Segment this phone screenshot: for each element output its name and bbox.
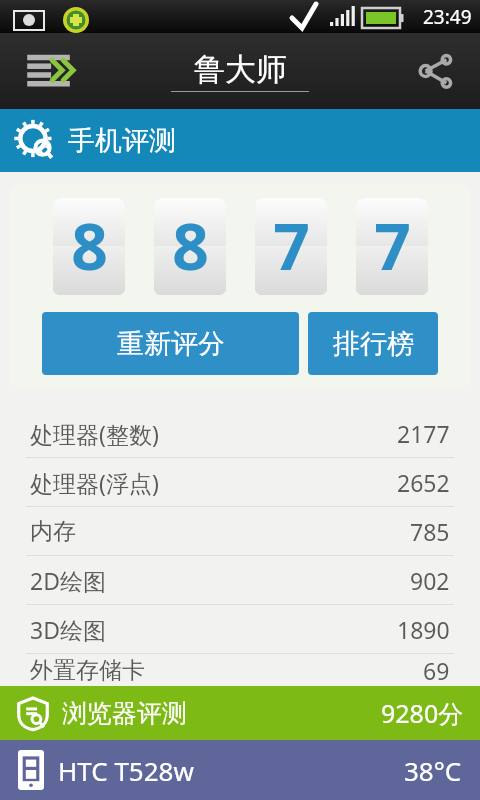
button[interactable]: 处理器(浮点) [0, 458, 480, 506]
button[interactable]: 浏览器评测 [0, 686, 480, 740]
staticText: 2652 [397, 467, 450, 498]
staticText: 785 [410, 516, 450, 547]
button[interactable]: 重新评分 [42, 312, 299, 375]
staticText: 鲁大师 [194, 50, 287, 89]
staticText: 38°C [404, 753, 462, 788]
staticText: 内存 [30, 517, 76, 546]
staticText: 8 [71, 202, 108, 289]
button[interactable]: Share [392, 33, 480, 109]
staticText: 处理器(浮点) [30, 467, 159, 498]
staticText: 手机评测 [68, 124, 176, 158]
staticText: 重新评分 [117, 327, 225, 361]
button[interactable]: Menu [0, 33, 96, 109]
staticText: 浏览器评测 [62, 698, 187, 729]
button[interactable]: 内存 [0, 507, 480, 555]
staticText: 69 [423, 655, 450, 686]
staticText: 1890 [397, 614, 450, 645]
staticText: HTC T528w [58, 753, 194, 788]
button[interactable]: 排行榜 [308, 312, 438, 375]
button[interactable]: HTC T528w [0, 740, 480, 800]
staticText: 7 [374, 202, 411, 289]
button[interactable]: 3D绘图 [0, 605, 480, 653]
staticText: 23:49 [423, 4, 472, 30]
staticText: 902 [410, 565, 450, 596]
button[interactable]: 手机评测 [0, 109, 480, 172]
staticText: 2D绘图 [30, 565, 106, 596]
staticText: 3D绘图 [30, 614, 106, 645]
staticText: 外置存储卡 [30, 656, 145, 685]
staticText: 9280分 [381, 696, 464, 730]
staticText: 处理器(整数) [30, 418, 159, 449]
button[interactable]: 2D绘图 [0, 556, 480, 604]
staticText: 排行榜 [333, 327, 414, 361]
staticText: 2177 [397, 418, 450, 449]
button[interactable]: 外置存储卡 [0, 654, 480, 686]
staticText: 7 [273, 202, 310, 289]
staticText: 8 [172, 202, 209, 289]
button[interactable]: 处理器(整数) [0, 409, 480, 457]
